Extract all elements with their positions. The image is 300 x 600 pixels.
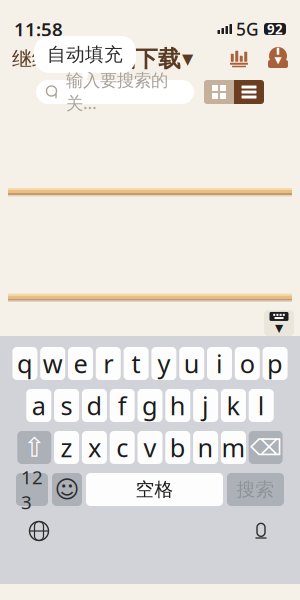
staticText: 5G <box>236 17 259 40</box>
button[interactable]: g <box>137 389 162 422</box>
staticText: x <box>88 431 101 464</box>
button[interactable]: s <box>54 389 79 422</box>
staticText: r <box>103 347 113 380</box>
staticText: i <box>216 347 223 380</box>
button[interactable]: 搜索 <box>227 473 284 506</box>
staticText: s <box>61 389 73 422</box>
button[interactable]: 切换键盘 <box>22 516 56 546</box>
staticText: z <box>61 431 73 464</box>
button[interactable]: a <box>26 389 51 422</box>
staticText: 自动填充 <box>47 43 123 66</box>
button[interactable]: 收起键盘 <box>264 310 294 336</box>
staticText: 搜索 <box>236 478 274 501</box>
staticText: b <box>170 431 186 464</box>
button[interactable]: c <box>110 431 135 464</box>
staticText: l <box>258 389 265 422</box>
staticText: k <box>226 389 240 422</box>
button[interactable]: 123 <box>16 473 48 506</box>
button[interactable]: h <box>165 389 190 422</box>
button[interactable]: d <box>82 389 107 422</box>
staticText: j <box>202 389 209 422</box>
button[interactable]: 输入要搜索的关… <box>36 80 194 104</box>
button[interactable]: q <box>12 347 37 380</box>
staticText: ▼ <box>275 322 283 334</box>
button[interactable]: w <box>40 347 65 380</box>
button[interactable]: p <box>263 347 288 380</box>
button[interactable]: j <box>193 389 218 422</box>
staticText: 123 <box>21 465 43 514</box>
staticText: e <box>73 347 87 380</box>
staticText: a <box>32 389 46 422</box>
button[interactable]: i <box>207 347 232 380</box>
button[interactable]: l <box>249 389 274 422</box>
button[interactable]: u <box>179 347 204 380</box>
button[interactable]: n <box>193 431 218 464</box>
button[interactable]: 下载 <box>266 48 290 70</box>
staticText: u <box>184 347 200 380</box>
button[interactable]: e <box>68 347 93 380</box>
button[interactable]: b <box>165 431 190 464</box>
staticText: p <box>267 347 283 380</box>
button[interactable]: 列表视图 <box>234 80 264 104</box>
button[interactable]: f <box>110 389 135 422</box>
staticText: ▼ <box>81 70 89 82</box>
button[interactable]: r <box>96 347 121 380</box>
button[interactable]: y <box>151 347 176 380</box>
button[interactable]: v <box>137 431 162 464</box>
staticText: 输入要搜索的关… <box>66 70 168 114</box>
staticText: t <box>132 347 141 380</box>
staticText: ▼ <box>182 51 193 67</box>
staticText: ☺ <box>54 476 79 503</box>
staticText: 11:58 <box>14 17 63 41</box>
staticText: q <box>17 347 33 380</box>
staticText: 92 <box>267 20 283 38</box>
staticText: g <box>142 389 158 422</box>
staticText: o <box>240 347 255 380</box>
staticText: ⌫ <box>250 435 282 460</box>
staticText: 空格 <box>135 478 173 501</box>
button[interactable]: k <box>221 389 246 422</box>
staticText: m <box>221 431 245 464</box>
staticText: h <box>170 389 186 422</box>
button[interactable]: 语音输入 <box>244 516 278 546</box>
button[interactable]: x <box>82 431 107 464</box>
button[interactable]: m <box>221 431 246 464</box>
staticText: 继续 <box>12 47 52 71</box>
button[interactable]: Shift <box>17 431 51 464</box>
button[interactable]: 删除 <box>249 431 283 464</box>
staticText: c <box>116 431 128 464</box>
button[interactable]: 网格视图 <box>204 80 234 104</box>
button[interactable]: t <box>124 347 149 380</box>
button[interactable]: 表情 <box>52 473 82 506</box>
button[interactable]: 空格 <box>86 473 223 506</box>
button[interactable]: 书城下载 <box>85 44 197 74</box>
button[interactable]: 继续 <box>10 44 54 74</box>
button[interactable]: 书架 <box>228 49 250 69</box>
staticText: ⇧ <box>23 432 45 463</box>
staticText: ▼ <box>274 55 281 65</box>
staticText: n <box>198 431 214 464</box>
staticText: v <box>143 431 156 464</box>
button[interactable]: z <box>54 431 79 464</box>
staticText: f <box>118 389 127 422</box>
staticText: d <box>86 389 102 422</box>
staticText: w <box>43 347 63 380</box>
button[interactable]: o <box>235 347 260 380</box>
staticText: 书城下载 <box>89 45 181 73</box>
staticText: y <box>157 347 170 380</box>
